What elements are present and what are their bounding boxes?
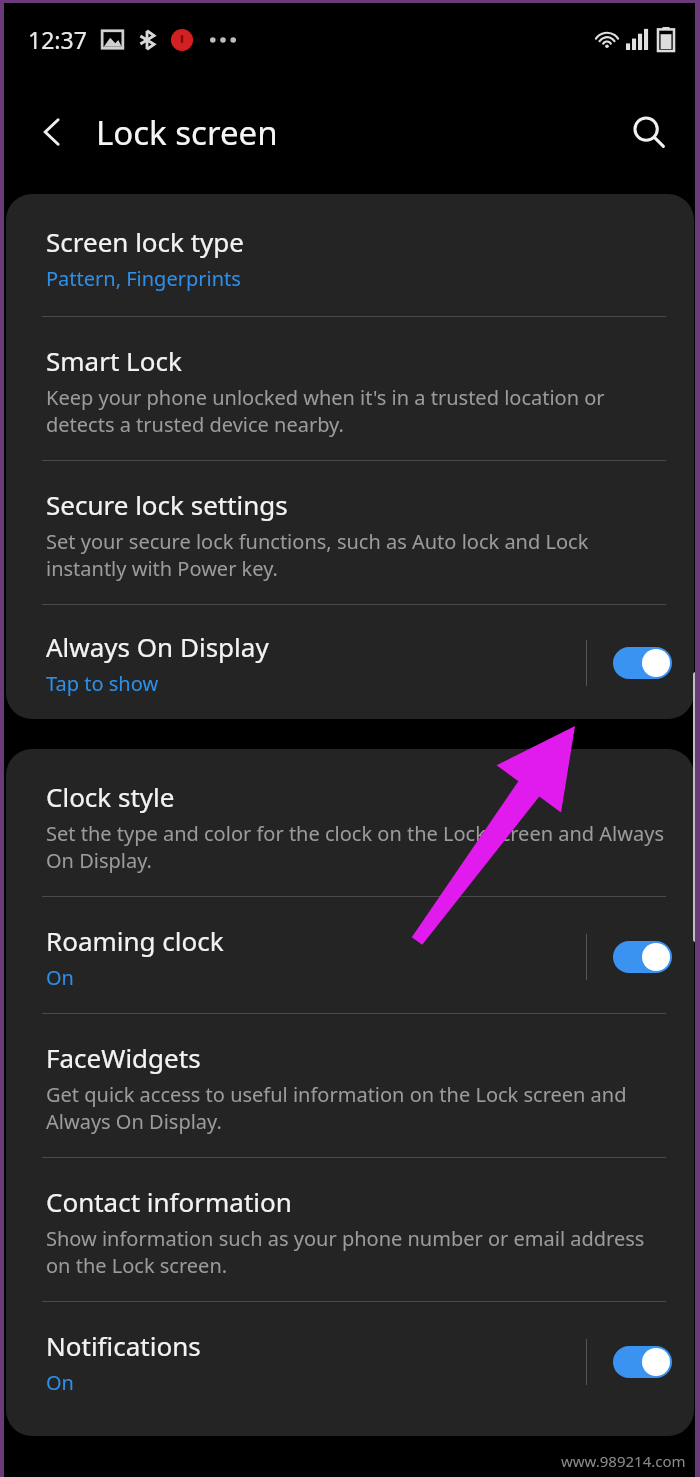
- staticText: Lock screen: [96, 110, 278, 155]
- button[interactable]: Toggle Always On Display: [613, 647, 672, 679]
- staticText: Show information such as your phone numb…: [46, 1225, 672, 1279]
- staticText: www.989214.com: [561, 1451, 686, 1471]
- staticText: Set your secure lock functions, such as …: [46, 528, 672, 582]
- button[interactable]: Contact information: [6, 1158, 694, 1301]
- staticText: On: [46, 964, 74, 991]
- button[interactable]: Search: [620, 103, 678, 161]
- button[interactable]: Roaming clock: [6, 897, 694, 1013]
- staticText: Secure lock settings: [46, 487, 288, 522]
- staticText: Smart Lock: [46, 343, 182, 378]
- staticText: 12:37: [28, 24, 87, 55]
- staticText: Pattern, Fingerprints: [46, 265, 241, 292]
- staticText: Roaming clock: [46, 923, 224, 958]
- staticText: Notifications: [46, 1328, 201, 1363]
- staticText: Set the type and color for the clock on …: [46, 820, 672, 874]
- staticText: Clock style: [46, 779, 175, 814]
- button[interactable]: Clock style: [6, 749, 694, 896]
- staticText: Always On Display: [46, 629, 269, 664]
- button[interactable]: Back: [24, 104, 80, 160]
- button[interactable]: Toggle Roaming clock: [613, 941, 672, 973]
- staticText: Tap to show: [46, 670, 159, 697]
- button[interactable]: Toggle Notifications: [613, 1346, 672, 1378]
- staticText: FaceWidgets: [46, 1040, 201, 1075]
- staticText: Get quick access to useful information o…: [46, 1081, 672, 1135]
- button[interactable]: Smart Lock: [6, 317, 694, 460]
- staticText: Screen lock type: [46, 224, 244, 259]
- button[interactable]: Notifications: [6, 1302, 694, 1436]
- button[interactable]: FaceWidgets: [6, 1014, 694, 1157]
- staticText: On: [46, 1369, 74, 1396]
- button[interactable]: Secure lock settings: [6, 461, 694, 604]
- button[interactable]: Always On Display: [6, 605, 694, 719]
- staticText: Contact information: [46, 1184, 292, 1219]
- button[interactable]: Screen lock type: [6, 194, 694, 316]
- staticText: Keep your phone unlocked when it's in a …: [46, 384, 672, 438]
